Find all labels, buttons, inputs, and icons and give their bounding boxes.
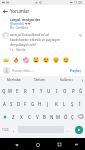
staticText: sosyal medyacılar (10, 17, 41, 21)
button[interactable]: B (41, 110, 48, 123)
staticText: 11:05 (74, 1, 83, 5)
button[interactable]: . (64, 123, 72, 136)
button[interactable]: A (1, 97, 8, 110)
staticText: I (56, 88, 58, 94)
staticText: ?123 (2, 128, 9, 132)
staticText: V (36, 114, 39, 120)
staticText: 1s (10, 48, 14, 52)
button[interactable]: K (52, 97, 60, 110)
button[interactable]: React (31, 55, 41, 65)
staticText: Paylaş (70, 68, 81, 73)
button[interactable]: React (41, 55, 51, 65)
button[interactable]: React (61, 55, 71, 65)
button[interactable]: Paylaş (69, 67, 82, 74)
staticText: İ (79, 101, 81, 107)
staticText: Z (12, 114, 15, 120)
button[interactable]: React (51, 55, 61, 65)
button[interactable]: Z (9, 110, 17, 123)
staticText: K (55, 101, 58, 107)
staticText: Y (40, 88, 43, 94)
button[interactable]: U (45, 84, 53, 97)
staticText: N (50, 114, 54, 120)
button[interactable]: F (22, 97, 29, 110)
button[interactable]: Backspace (76, 110, 85, 123)
button[interactable]: , (10, 123, 18, 136)
button[interactable]: Back (12, 140, 21, 149)
staticText: . (67, 127, 69, 133)
staticText: R (24, 88, 27, 94)
button[interactable]: Y (37, 84, 45, 97)
staticText: ❤ (28, 22, 31, 25)
button[interactable]: Ş (68, 97, 76, 110)
staticText: Kullanıcı (60, 78, 73, 82)
button[interactable]: S (8, 97, 15, 110)
staticText: Yanıtla (16, 48, 26, 52)
button[interactable]: H (36, 97, 44, 110)
staticText: Yorumlar (10, 8, 30, 14)
button[interactable]: Kullanıcı (53, 76, 79, 84)
button[interactable]: Like (77, 33, 83, 38)
button[interactable]: Send (72, 123, 85, 136)
button[interactable]: ?123 (0, 123, 10, 136)
button[interactable]: Shift (0, 110, 9, 123)
button[interactable]: W (7, 84, 14, 97)
staticText: X (20, 114, 23, 120)
staticText: Ç (71, 114, 74, 120)
staticText: B (43, 114, 46, 120)
staticText: azra_ai Bunuolksod m'uzl kasdvhaolor etk… (10, 32, 61, 47)
staticText: F (24, 101, 27, 107)
button[interactable]: T (29, 84, 37, 97)
staticText: Q (2, 88, 6, 94)
button[interactable]: Merhaba (0, 76, 27, 84)
button[interactable]: N (48, 110, 55, 123)
button[interactable]: D (15, 97, 22, 110)
button[interactable]: O (61, 84, 69, 97)
button[interactable]: Ö (62, 110, 69, 123)
staticText: S (10, 101, 13, 107)
staticText: T (32, 88, 35, 94)
button[interactable]: Q (0, 84, 7, 97)
button[interactable]: Ğ (77, 84, 85, 97)
staticText: G (31, 101, 35, 107)
staticText: W (8, 88, 13, 94)
button[interactable]: I (53, 84, 61, 97)
button[interactable]: More suggestions (79, 76, 85, 84)
staticText: P (72, 88, 75, 94)
button[interactable]: R (21, 84, 29, 97)
button[interactable]: X (17, 110, 25, 123)
button[interactable]: Keyboard (72, 140, 80, 148)
button[interactable]: Tamam (27, 76, 53, 84)
staticText: A (3, 101, 6, 107)
staticText: Yorum ekle... (12, 68, 33, 73)
button[interactable]: Ç (69, 110, 76, 123)
button[interactable]: P (69, 84, 77, 97)
button[interactable]: G (29, 97, 36, 110)
staticText: J (47, 101, 49, 107)
button[interactable]: İ (76, 97, 84, 110)
staticText: D (17, 101, 21, 107)
button[interactable]: Back (0, 6, 10, 16)
button[interactable]: Recent apps (55, 140, 64, 149)
button[interactable]: L (60, 97, 68, 110)
button[interactable]: J (44, 97, 52, 110)
staticText: ❤ (25, 22, 28, 25)
button[interactable]: React (21, 55, 31, 65)
button[interactable]: React (1, 55, 11, 65)
button[interactable]: C (25, 110, 33, 123)
staticText: @ornekk (10, 21, 24, 25)
button[interactable]: V (33, 110, 41, 123)
button[interactable]: React (11, 55, 21, 65)
staticText: Ö (64, 114, 68, 120)
button[interactable]: E (14, 84, 21, 97)
staticText: , (13, 127, 15, 133)
staticText: U (47, 88, 51, 94)
staticText: Ş (71, 101, 74, 107)
button[interactable]: Home (33, 140, 42, 149)
staticText: C (28, 114, 31, 120)
staticText: M (56, 114, 61, 120)
button[interactable]: M (55, 110, 62, 123)
staticText: Tamam (34, 78, 46, 82)
staticText: Bir Özelliktir (10, 26, 28, 30)
staticText: L (63, 101, 66, 107)
